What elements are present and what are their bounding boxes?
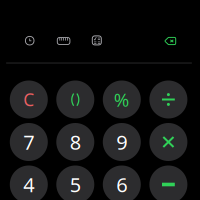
staticText: C xyxy=(23,88,34,111)
button[interactable]: 8 xyxy=(56,123,94,161)
button[interactable]: C xyxy=(10,80,48,118)
staticText: % xyxy=(114,87,130,112)
staticText: 4 xyxy=(23,171,34,198)
button[interactable]: Unit converter xyxy=(57,36,71,45)
staticText: 8 xyxy=(70,129,81,155)
button[interactable]: Scientific calculator xyxy=(91,35,102,46)
button[interactable]: Minus xyxy=(149,165,187,200)
staticText: 5 xyxy=(70,171,81,198)
button[interactable]: Multiply xyxy=(149,123,187,161)
button[interactable]: 9 xyxy=(103,123,141,161)
button[interactable]: 4 xyxy=(10,165,48,200)
button[interactable]: Divide xyxy=(149,80,187,118)
button[interactable]: Parentheses xyxy=(56,80,94,118)
button[interactable]: 5 xyxy=(56,165,94,200)
staticText: 9 xyxy=(116,129,127,155)
button[interactable]: % xyxy=(103,80,141,118)
staticText: 6 xyxy=(116,171,127,198)
button[interactable]: 6 xyxy=(103,165,141,200)
button[interactable]: 7 xyxy=(10,123,48,161)
button[interactable]: Delete xyxy=(164,36,177,46)
staticText: 7 xyxy=(23,129,34,155)
button[interactable]: History xyxy=(24,35,35,46)
